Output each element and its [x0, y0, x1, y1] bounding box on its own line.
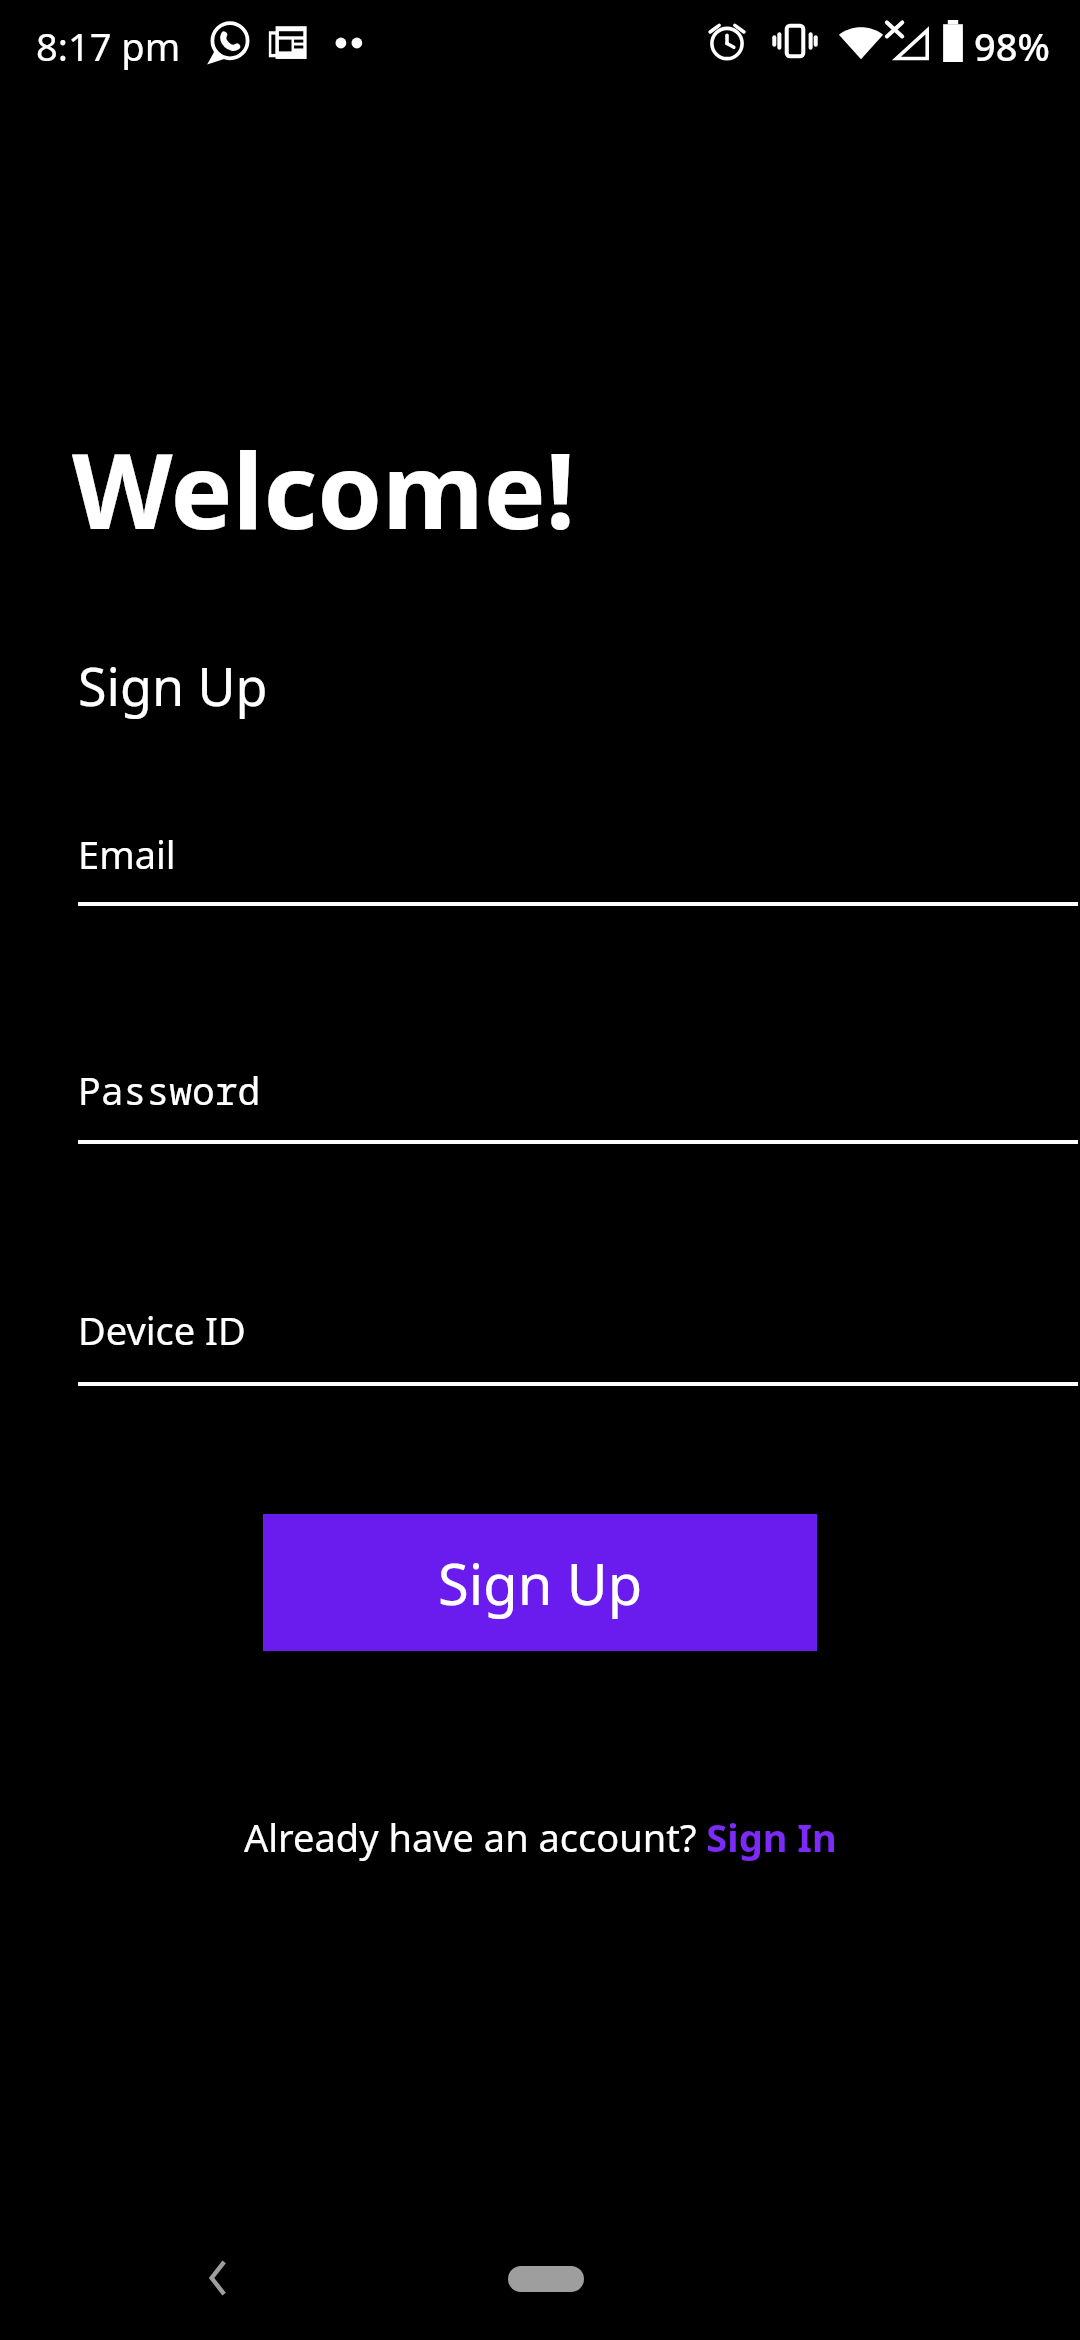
- staticText: Already have an account? Sign In: [244, 1811, 837, 1863]
- staticText: Email: [78, 828, 176, 880]
- button[interactable]: Already have an account? Sign In: [0, 1796, 1080, 1878]
- button[interactable]: Back: [178, 2238, 258, 2318]
- staticText: 98%: [974, 20, 1050, 72]
- staticText: Device ID: [78, 1304, 246, 1356]
- staticText: Welcome!: [72, 418, 576, 560]
- button[interactable]: Password: [0, 1030, 1080, 1158]
- staticText: Password: [78, 1064, 261, 1116]
- button[interactable]: Home: [508, 2266, 584, 2292]
- button[interactable]: Email: [0, 794, 1080, 920]
- button[interactable]: Sign Up: [263, 1514, 817, 1651]
- staticText: 8:17 pm: [36, 20, 181, 72]
- button[interactable]: Device ID: [0, 1270, 1080, 1400]
- staticText: Sign Up: [78, 650, 268, 721]
- staticText: Sign Up: [438, 1545, 643, 1621]
